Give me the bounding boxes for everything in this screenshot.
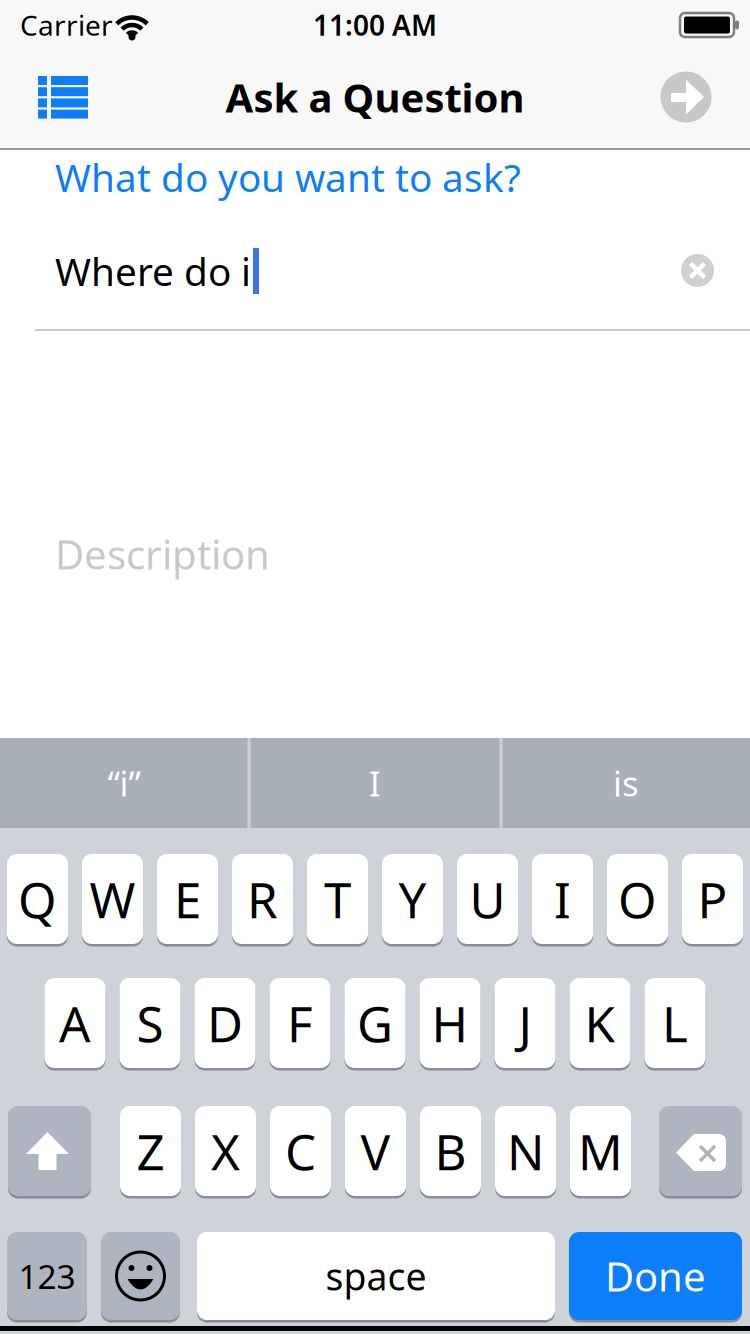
staticText: U [469,866,505,932]
button[interactable]: V [345,1104,406,1197]
button[interactable]: Emoji [101,1230,180,1321]
button[interactable]: N [495,1104,556,1197]
staticText: L [662,990,688,1056]
button[interactable]: Z [120,1104,181,1197]
button[interactable]: F [269,976,330,1069]
staticText: Done [605,1249,706,1302]
button[interactable]: Y [382,852,443,945]
staticText: M [578,1118,623,1184]
staticText: Q [18,866,57,932]
staticText: E [174,866,201,932]
button[interactable]: A [44,976,105,1069]
staticText: W [89,866,135,932]
button[interactable]: Delete [659,1104,742,1197]
staticText: What do you want to ask? [55,151,521,203]
staticText: H [431,990,468,1056]
staticText: Z [136,1118,164,1184]
staticText: Ask a Question [225,70,524,123]
button[interactable]: I [532,852,593,945]
staticText: T [324,866,351,932]
button[interactable]: B [420,1104,481,1197]
staticText: G [357,990,393,1056]
button[interactable]: J [494,976,555,1069]
button[interactable]: Done [569,1230,742,1321]
staticText: is [613,760,639,806]
button[interactable]: “i” [0,738,247,828]
button[interactable]: U [457,852,518,945]
button[interactable]: I [251,738,498,828]
button[interactable]: C [270,1104,331,1197]
button[interactable]: S [119,976,180,1069]
button[interactable]: Q [7,852,68,945]
staticText: V [360,1118,390,1184]
button[interactable]: Shift [8,1104,91,1197]
button[interactable]: R [232,852,293,945]
staticText: I [554,866,571,932]
button[interactable]: L [644,976,705,1069]
staticText: space [325,1251,426,1301]
button[interactable]: E [157,852,218,945]
staticText: N [507,1118,544,1184]
staticText: S [136,990,163,1056]
button[interactable]: W [82,852,143,945]
staticText: F [287,990,313,1056]
staticText: Y [398,866,426,932]
button[interactable]: Clear text [681,254,714,287]
staticText: 11:00 AM [313,6,437,44]
button[interactable]: is [502,738,749,828]
staticText: Description [55,527,270,580]
staticText: 123 [18,1254,75,1298]
button[interactable]: H [419,976,480,1069]
staticText: Carrier [20,6,113,44]
button[interactable]: M [570,1104,631,1197]
staticText: B [434,1118,466,1184]
staticText: X [211,1118,240,1184]
button[interactable]: G [344,976,405,1069]
staticText: “i” [107,760,140,806]
button[interactable]: O [607,852,668,945]
staticText: C [285,1118,316,1184]
button[interactable]: space [197,1230,555,1321]
button[interactable]: D [194,976,255,1069]
button[interactable]: T [307,852,368,945]
button[interactable]: X [195,1104,256,1197]
button[interactable]: Menu [30,66,94,126]
staticText: I [369,760,381,806]
staticText: D [207,990,243,1056]
button[interactable]: 123 [7,1230,87,1321]
staticText: O [618,866,657,932]
button[interactable]: Submit [660,71,711,122]
staticText: Where do i [55,245,251,297]
staticText: A [59,990,91,1056]
staticText: P [697,866,727,932]
button[interactable]: K [569,976,630,1069]
staticText: J [518,990,531,1056]
button[interactable]: P [682,852,743,945]
staticText: K [584,990,615,1056]
staticText: R [247,866,278,932]
